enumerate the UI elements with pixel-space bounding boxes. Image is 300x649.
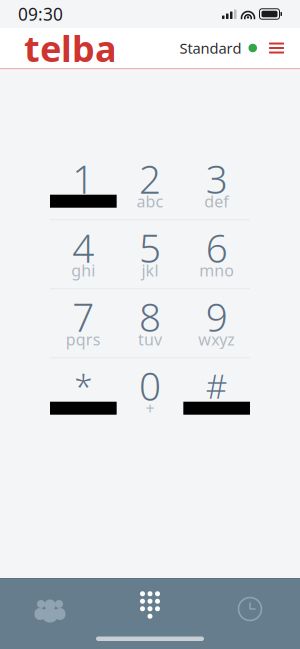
staticText: 2 xyxy=(139,153,161,204)
button[interactable]: 8 xyxy=(117,289,183,357)
button[interactable]: telba xyxy=(0,28,125,68)
button[interactable]: 5 xyxy=(117,220,183,288)
staticText: Standard xyxy=(179,38,241,58)
button[interactable]: 9 xyxy=(183,289,250,357)
staticText: telba xyxy=(24,24,117,72)
button[interactable]: Menu xyxy=(261,32,300,63)
button[interactable]: Standard xyxy=(175,30,261,66)
staticText: tuv xyxy=(138,329,162,350)
staticText: 4 xyxy=(72,222,94,273)
button[interactable]: Contacts xyxy=(0,590,100,628)
staticText: abc xyxy=(136,191,163,212)
staticText: 6 xyxy=(206,222,228,273)
staticText: + xyxy=(145,398,154,419)
staticText: 1 xyxy=(72,153,94,204)
button[interactable]: Recents xyxy=(200,590,300,628)
staticText: 9 xyxy=(206,291,228,342)
staticText: def xyxy=(204,191,229,212)
staticText: 09:30 xyxy=(18,2,63,25)
button[interactable]: 7 xyxy=(50,289,117,357)
staticText: wxyz xyxy=(198,329,235,350)
button[interactable]: 0 xyxy=(117,358,183,426)
staticText: # xyxy=(206,364,228,408)
staticText: pqrs xyxy=(66,329,101,350)
staticText: 3 xyxy=(206,153,228,204)
button[interactable]: Keypad xyxy=(100,590,200,628)
button[interactable]: 3 xyxy=(183,151,250,219)
staticText: jkl xyxy=(141,260,158,281)
button[interactable]: * xyxy=(50,358,117,426)
button[interactable]: # xyxy=(183,358,250,426)
button[interactable]: 6 xyxy=(183,220,250,288)
staticText: 5 xyxy=(139,222,161,273)
button[interactable]: 1 xyxy=(50,151,117,219)
staticText: 8 xyxy=(139,291,161,342)
button[interactable]: 2 xyxy=(117,151,183,219)
staticText: ghi xyxy=(71,260,95,281)
button[interactable]: 4 xyxy=(50,220,117,288)
staticText: 7 xyxy=(72,291,94,342)
staticText: * xyxy=(74,364,92,408)
staticText: mno xyxy=(199,260,234,281)
staticText: 0 xyxy=(139,360,161,411)
